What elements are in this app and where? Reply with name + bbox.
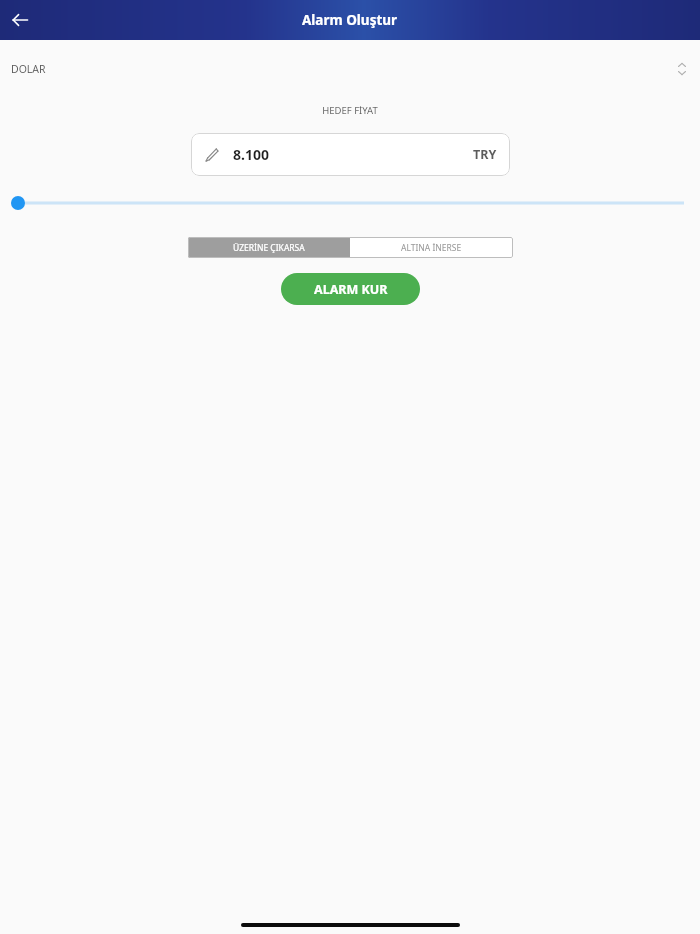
staticText: Alarm Oluştur [302, 11, 398, 29]
staticText: ÜZERİNE ÇIKARSA [233, 242, 305, 254]
button[interactable]: ALARM KUR [281, 273, 420, 305]
button[interactable]: 8.100 [191, 133, 510, 176]
staticText: ALTINA İNERSE [401, 242, 462, 254]
staticText: ALARM KUR [314, 281, 388, 298]
staticText: TRY [473, 146, 497, 163]
button[interactable]: Back [0, 0, 40, 40]
button[interactable]: Price slider [0, 193, 700, 213]
button[interactable]: DOLAR [0, 40, 700, 98]
other: Select symbol [671, 58, 693, 80]
button[interactable]: ÜZERİNE ÇIKARSA [188, 237, 350, 258]
staticText: DOLAR [11, 62, 46, 76]
button[interactable]: ALTINA İNERSE [350, 237, 513, 258]
staticText: 8.100 [233, 145, 269, 164]
staticText: HEDEF FİYAT [322, 104, 378, 117]
